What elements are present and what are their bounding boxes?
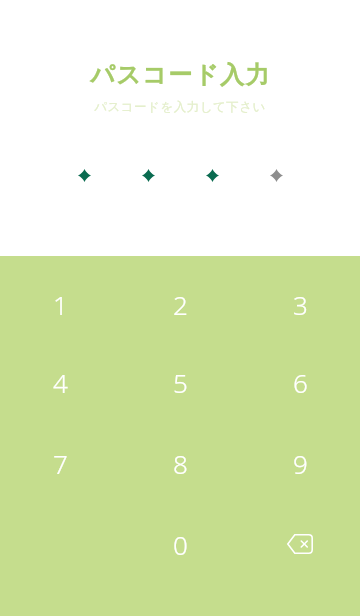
button[interactable]: 2 bbox=[120, 277, 240, 331]
button[interactable]: 5 bbox=[120, 355, 240, 409]
button[interactable]: 4 bbox=[0, 355, 120, 409]
button[interactable]: 0 bbox=[120, 517, 240, 571]
button[interactable]: 1 bbox=[0, 277, 120, 331]
staticText: 2 bbox=[173, 287, 188, 322]
staticText: 7 bbox=[53, 446, 68, 481]
staticText: 5 bbox=[173, 365, 188, 400]
button[interactable]: 9 bbox=[240, 436, 360, 490]
button[interactable]: 6 bbox=[240, 355, 360, 409]
button[interactable]: 7 bbox=[0, 436, 120, 490]
staticText: 9 bbox=[293, 446, 308, 481]
button[interactable]: Delete bbox=[240, 517, 360, 571]
staticText: 1 bbox=[53, 287, 68, 322]
staticText: 8 bbox=[173, 446, 188, 481]
button[interactable]: 3 bbox=[240, 277, 360, 331]
button[interactable]: 8 bbox=[120, 436, 240, 490]
staticText: パスコードを入力して下さい bbox=[94, 99, 266, 115]
staticText: パスコード入力 bbox=[90, 60, 271, 90]
staticText: 3 bbox=[293, 287, 308, 322]
staticText: 0 bbox=[173, 527, 188, 562]
staticText: 4 bbox=[53, 365, 68, 400]
staticText: 6 bbox=[293, 365, 308, 400]
